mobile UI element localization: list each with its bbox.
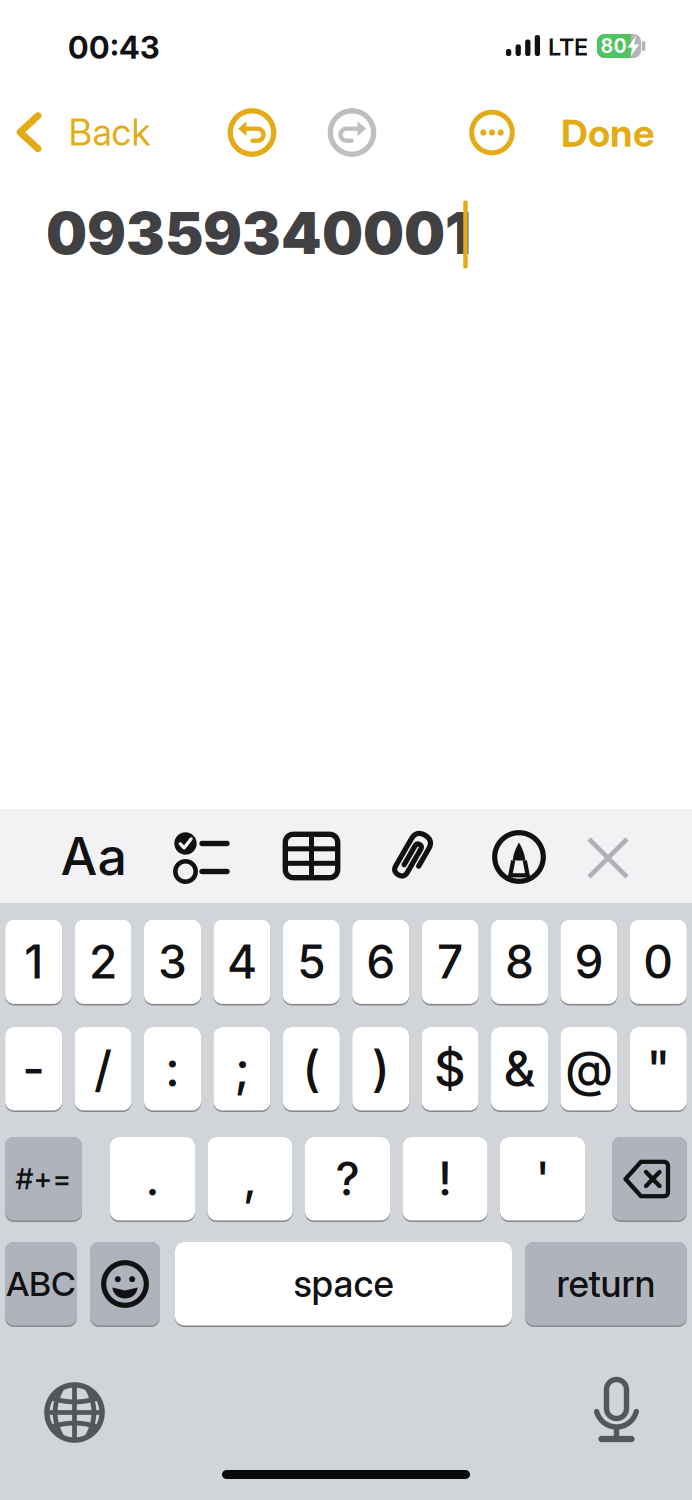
staticText: 4 [227, 934, 257, 990]
button[interactable]: / [75, 1027, 132, 1112]
staticText: : [165, 1039, 180, 1098]
staticText: @ [565, 1039, 613, 1098]
staticText: 3 [158, 934, 187, 990]
button[interactable]: Done [561, 110, 655, 156]
staticText: 80 [600, 34, 626, 58]
staticText: ( [302, 1039, 320, 1098]
staticText: ABC [6, 1263, 76, 1304]
staticText: - [22, 1039, 45, 1098]
button[interactable]: ' [500, 1137, 585, 1222]
button[interactable]: ABC [5, 1242, 77, 1327]
staticText: ) [372, 1039, 390, 1098]
staticText: & [503, 1039, 535, 1098]
staticText: ' [535, 1151, 549, 1207]
button[interactable]: ; [213, 1027, 270, 1112]
button[interactable]: Dictate [593, 1377, 639, 1442]
staticText: 00:43 [68, 29, 160, 66]
button[interactable]: 1 [5, 919, 62, 1005]
button[interactable]: Undo [227, 107, 277, 157]
staticText: , [243, 1151, 257, 1207]
button[interactable]: Next keyboard [44, 1382, 104, 1442]
staticText: 6 [366, 934, 395, 990]
button[interactable]: ( [283, 1027, 340, 1112]
button[interactable]: 5 [283, 919, 340, 1005]
staticText: Back [68, 110, 150, 154]
button[interactable]: ) [352, 1027, 409, 1112]
staticText: return [556, 1261, 655, 1306]
button[interactable]: & [491, 1027, 548, 1112]
button[interactable]: Table [282, 827, 340, 885]
button[interactable]: Format [60, 824, 127, 887]
button[interactable]: space [175, 1242, 512, 1327]
button[interactable]: Checklist [172, 828, 229, 885]
staticText: #+= [15, 1161, 71, 1196]
button[interactable]: 9 [560, 919, 617, 1005]
staticText: space [293, 1261, 393, 1306]
staticText: 09359340001 [46, 198, 471, 268]
button[interactable]: . [110, 1137, 195, 1222]
staticText: ? [335, 1151, 359, 1207]
staticText: 2 [89, 934, 117, 990]
button[interactable]: 2 [75, 919, 132, 1005]
staticText: LTE [548, 33, 588, 61]
staticText: 5 [297, 934, 325, 990]
button[interactable]: #+= [5, 1137, 82, 1222]
button[interactable]: ? [305, 1137, 390, 1222]
button[interactable]: Markup [492, 830, 546, 884]
staticText: 9 [574, 934, 603, 990]
button[interactable]: Emoji [90, 1242, 160, 1327]
button[interactable]: 8 [491, 919, 548, 1005]
staticText: 1 [24, 934, 43, 990]
staticText: . [145, 1151, 159, 1207]
button[interactable]: , [207, 1137, 292, 1222]
button[interactable]: $ [422, 1027, 479, 1112]
staticText: " [646, 1039, 670, 1098]
staticText: Done [561, 110, 655, 156]
staticText: ; [234, 1039, 249, 1098]
button[interactable]: 0 [630, 919, 687, 1005]
button[interactable]: Delete [612, 1137, 687, 1222]
staticText: 0 [643, 934, 673, 990]
staticText: 8 [505, 934, 534, 990]
button[interactable]: 4 [213, 919, 270, 1005]
button[interactable]: : [144, 1027, 201, 1112]
button[interactable]: @ [560, 1027, 617, 1112]
button[interactable]: 7 [422, 919, 479, 1005]
button[interactable]: ! [402, 1137, 487, 1222]
staticText: $ [434, 1039, 466, 1098]
button[interactable]: " [630, 1027, 687, 1112]
button[interactable]: Redo [327, 107, 377, 157]
button[interactable]: More [467, 107, 517, 157]
button[interactable]: Back [16, 110, 150, 154]
button[interactable]: return [525, 1242, 687, 1327]
button[interactable]: Dismiss keyboard [585, 835, 631, 881]
staticText: Aa [60, 824, 127, 887]
button[interactable]: - [5, 1027, 62, 1112]
staticText: ! [438, 1151, 452, 1207]
staticText: / [94, 1039, 112, 1098]
staticText: 7 [437, 934, 463, 990]
button[interactable]: 6 [352, 919, 409, 1005]
button[interactable]: Attach [389, 827, 439, 887]
button[interactable]: 3 [144, 919, 201, 1005]
